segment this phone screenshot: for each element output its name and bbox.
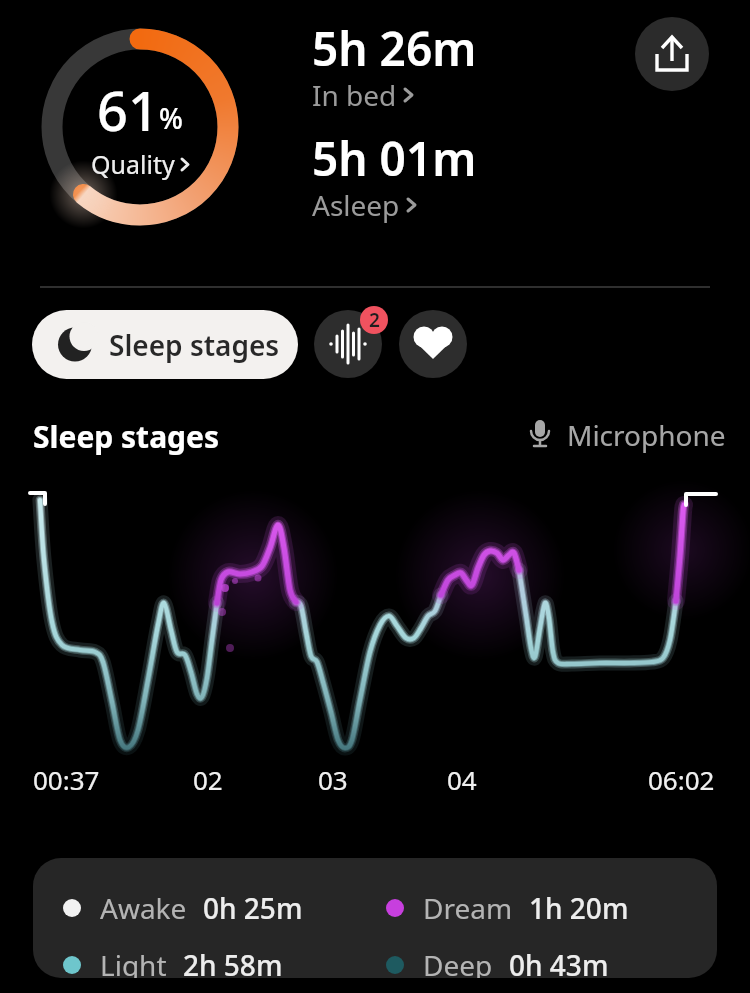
staticText: 5h 26m — [312, 17, 477, 80]
button[interactable]: Asleep — [312, 186, 416, 224]
staticText: Quality — [91, 147, 175, 181]
staticText: 1h 20m — [529, 889, 629, 927]
staticText: 0h 25m — [203, 889, 303, 927]
staticText: Asleep — [312, 186, 400, 224]
button[interactable]: Deep — [386, 945, 609, 978]
staticText: 02 — [193, 762, 223, 797]
staticText: 5h 01m — [312, 127, 477, 190]
staticText: 61 — [97, 73, 159, 147]
staticText: 0h 43m — [509, 946, 609, 978]
button[interactable] — [399, 310, 467, 378]
button[interactable]: In bed — [312, 76, 413, 114]
staticText: Deep — [423, 946, 493, 978]
staticText: Dream — [423, 889, 513, 927]
button[interactable]: Awake — [63, 888, 303, 928]
button[interactable] — [314, 310, 382, 378]
staticText: Light — [100, 946, 167, 978]
staticText: Sleep stages — [33, 416, 220, 457]
staticText: 06:02 — [648, 762, 715, 797]
staticText: 04 — [447, 762, 477, 797]
staticText: 00:37 — [33, 762, 100, 797]
button[interactable] — [635, 17, 709, 91]
button[interactable]: Dream — [386, 888, 629, 928]
button[interactable]: 61 — [35, 22, 245, 232]
staticText: % — [159, 99, 183, 137]
staticText: Sleep stages — [109, 326, 280, 364]
button[interactable]: Microphone — [528, 416, 726, 454]
button[interactable]: Light — [63, 945, 283, 978]
staticText: 03 — [318, 762, 348, 797]
staticText: 2h 58m — [183, 946, 283, 978]
staticText: Awake — [100, 889, 187, 927]
staticText: Microphone — [567, 416, 726, 454]
staticText: In bed — [312, 76, 397, 114]
staticText: 2 — [369, 307, 380, 333]
button[interactable]: Sleep stages — [32, 310, 298, 379]
